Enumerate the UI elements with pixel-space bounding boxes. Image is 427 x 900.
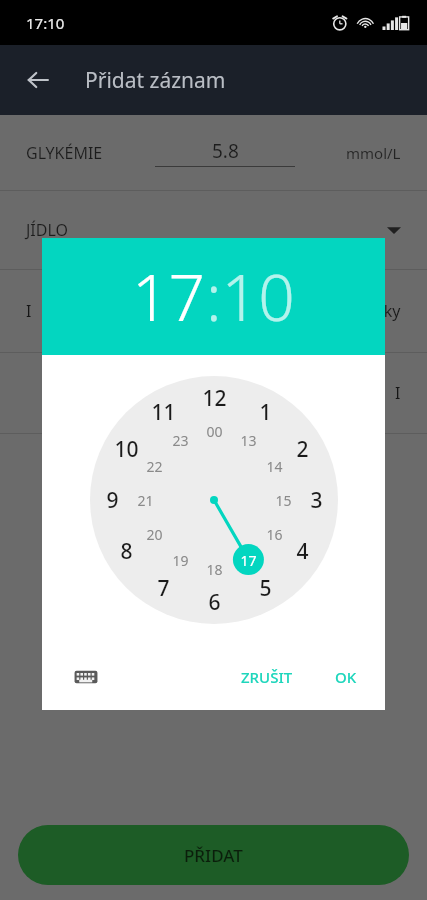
button[interactable]: 8 [109, 534, 143, 568]
staticText: 19 [172, 551, 189, 570]
staticText: 20 [146, 525, 163, 544]
staticText: 7 [157, 574, 170, 603]
staticText: 17:10 [26, 13, 65, 33]
button[interactable]: 00 [197, 414, 231, 448]
button[interactable]: 13 [231, 423, 265, 457]
button[interactable]: 2 [285, 432, 319, 466]
button[interactable]: 17 [231, 543, 265, 577]
button[interactable]: Back [16, 58, 60, 102]
button[interactable]: 18 [197, 552, 231, 586]
button[interactable]: 5 [248, 571, 282, 605]
button[interactable]: 6 [197, 585, 231, 619]
button[interactable]: Switch to keyboard input [66, 657, 106, 697]
staticText: 9 [106, 486, 119, 515]
button[interactable]: 10 [109, 432, 143, 466]
staticText: 8 [120, 537, 133, 566]
button[interactable]: 22 [137, 449, 171, 483]
staticText: 22 [146, 457, 163, 476]
staticText: 2 [296, 435, 309, 464]
button[interactable]: 20 [137, 517, 171, 551]
staticText: I [26, 300, 32, 322]
staticText: PŘIDAT [184, 844, 243, 867]
staticText: :10 [206, 253, 295, 340]
staticText: 5.8 [212, 138, 239, 164]
staticText: 16 [266, 525, 283, 544]
button[interactable]: 23 [163, 423, 197, 457]
button[interactable]: 3 [299, 483, 333, 517]
staticText: I [395, 382, 401, 404]
button[interactable]: PŘIDAT [18, 825, 409, 885]
button[interactable]: ZRUŠIT [229, 659, 305, 695]
staticText: ZRUŠIT [241, 667, 293, 687]
staticText: 11 [151, 398, 176, 427]
button[interactable]: 12 [197, 381, 231, 415]
button[interactable]: 4 [285, 534, 319, 568]
staticText: tky [378, 300, 401, 322]
button[interactable]: 14 [257, 449, 291, 483]
staticText: 17 [240, 551, 257, 570]
staticText: 4 [296, 537, 309, 566]
staticText: OK [335, 667, 357, 687]
button[interactable]: OK [323, 659, 369, 695]
staticText: mmol/L [346, 143, 401, 163]
staticText: 14 [266, 457, 283, 476]
staticText: 10 [114, 435, 139, 464]
button[interactable]: 21 [128, 483, 162, 517]
staticText: 23 [172, 431, 189, 450]
button[interactable]: 9 [95, 483, 129, 517]
staticText: 3 [310, 486, 323, 515]
staticText: 1 [259, 398, 272, 427]
staticText: 6 [208, 588, 221, 617]
staticText: 18 [206, 560, 223, 579]
staticText: 5 [259, 574, 272, 603]
staticText: 13 [240, 431, 257, 450]
staticText: 12 [202, 384, 227, 413]
button[interactable]: 11 [146, 395, 180, 429]
button[interactable]: 17 [42, 238, 385, 355]
staticText: 15 [275, 491, 292, 510]
staticText: 21 [137, 491, 154, 510]
staticText: 17 [132, 253, 206, 340]
staticText: GLYKÉMIE [26, 142, 103, 164]
button[interactable]: 15 [266, 483, 300, 517]
button[interactable]: 7 [146, 571, 180, 605]
staticText: Přidat záznam [85, 66, 226, 95]
staticText: JÍDLO [26, 219, 69, 241]
button[interactable]: 1 [248, 395, 282, 429]
staticText: 00 [206, 422, 223, 441]
button[interactable]: 19 [163, 543, 197, 577]
button[interactable]: 16 [257, 517, 291, 551]
